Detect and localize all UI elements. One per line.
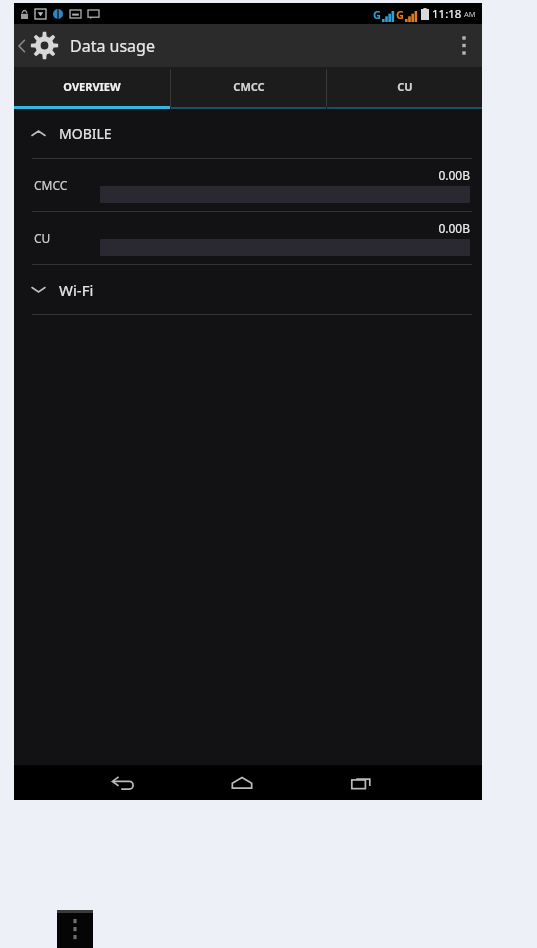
- staticText: 0.00B: [100, 220, 470, 236]
- staticText: CMCC: [34, 177, 68, 193]
- staticText: MOBILE: [59, 124, 112, 143]
- button[interactable]: Recent apps: [333, 765, 389, 800]
- button[interactable]: Data usage: [14, 24, 163, 67]
- staticText: CU: [397, 79, 413, 94]
- staticText: G: [396, 7, 404, 22]
- staticText: G: [373, 7, 381, 22]
- staticText: CU: [34, 230, 51, 246]
- staticText: OVERVIEW: [63, 79, 121, 94]
- button[interactable]: CMCC: [14, 159, 482, 211]
- staticText: 0.00B: [100, 167, 470, 183]
- button[interactable]: Back: [95, 765, 151, 800]
- staticText: Data usage: [70, 35, 155, 57]
- button[interactable]: MOBILE: [14, 109, 482, 158]
- button[interactable]: CMCC: [171, 67, 326, 109]
- staticText: 11:18: [432, 6, 462, 22]
- staticText: AM: [464, 9, 476, 19]
- staticText: Wi-Fi: [59, 280, 94, 300]
- staticText: CMCC: [233, 79, 265, 94]
- button[interactable]: CU: [327, 67, 482, 109]
- button[interactable]: Wi-Fi: [14, 265, 482, 314]
- button[interactable]: More options: [446, 24, 482, 67]
- button[interactable]: More options: [57, 910, 93, 948]
- button[interactable]: OVERVIEW: [14, 67, 170, 109]
- button[interactable]: Home: [214, 765, 270, 800]
- button[interactable]: CU: [14, 212, 482, 264]
